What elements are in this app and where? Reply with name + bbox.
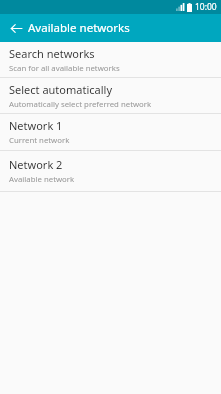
staticText: Available network	[9, 174, 75, 185]
staticText: Network 2	[9, 157, 63, 172]
staticText: Network 1	[9, 118, 63, 133]
button[interactable]: Back	[6, 18, 26, 38]
staticText: Scan for all available networks	[9, 63, 120, 74]
button[interactable]: Network 2	[0, 151, 221, 191]
staticText: Available networks	[28, 20, 130, 36]
button[interactable]: Search networks	[0, 42, 221, 77]
staticText: Current network	[9, 135, 70, 146]
staticText: 10:00	[195, 1, 217, 13]
staticText: Search networks	[9, 46, 95, 61]
staticText: Select automatically	[9, 82, 112, 97]
button[interactable]: Network 1	[0, 114, 221, 150]
staticText: Automatically select preferred network	[9, 99, 152, 110]
button[interactable]: Select automatically	[0, 78, 221, 113]
